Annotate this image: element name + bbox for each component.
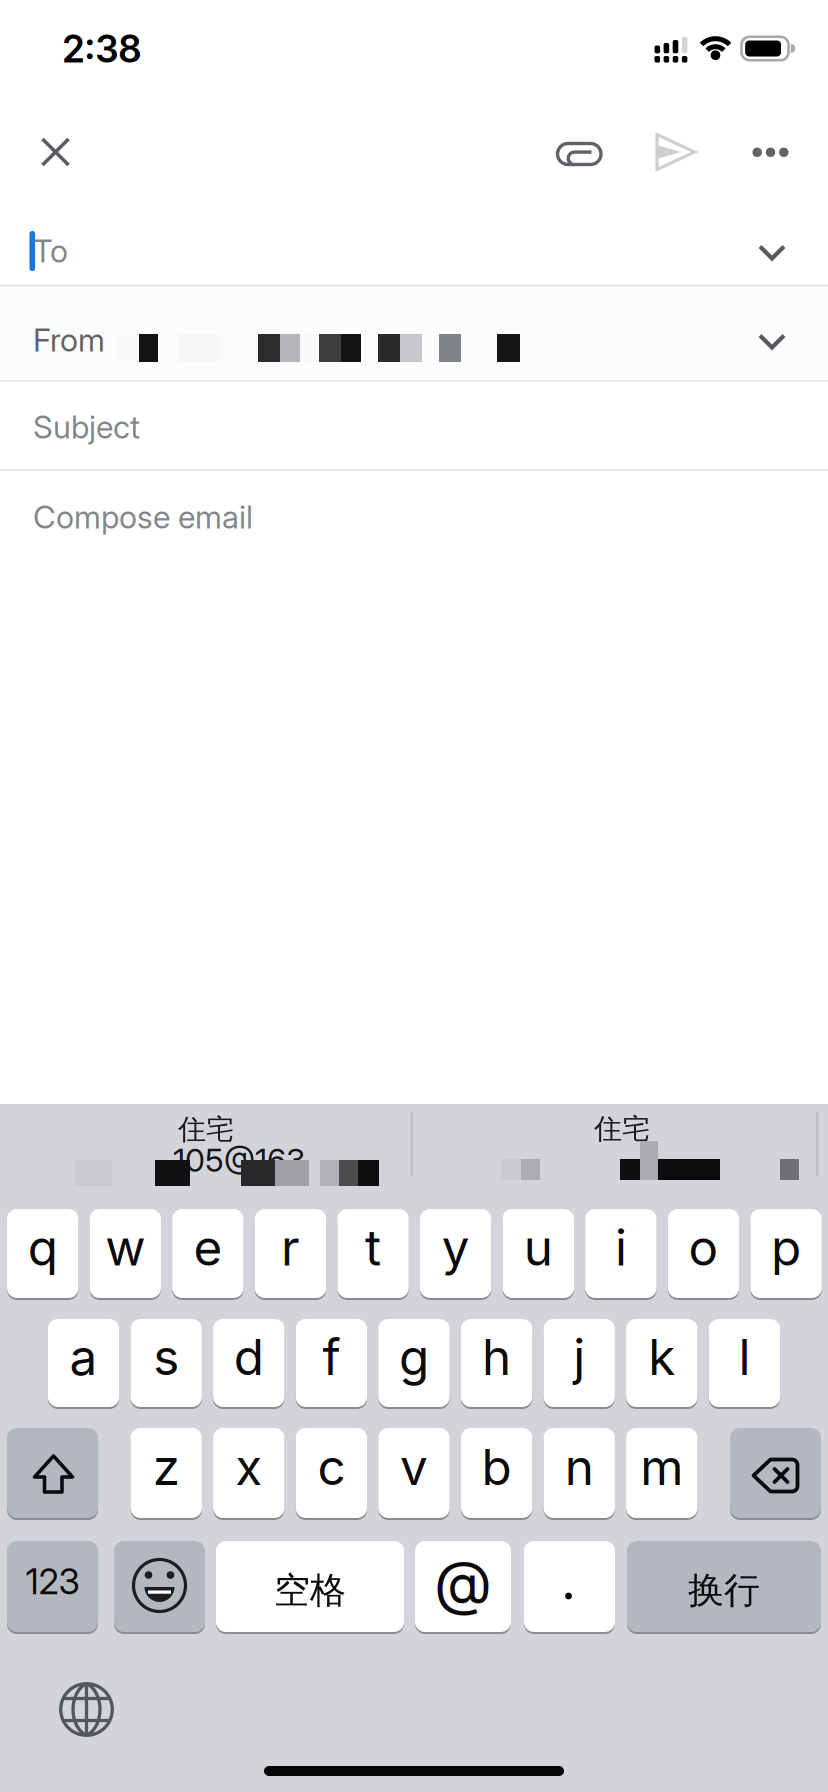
staticText: j — [573, 1327, 585, 1387]
button[interactable]: a — [48, 1318, 119, 1408]
button[interactable]: 123 — [7, 1540, 98, 1633]
button[interactable]: y — [420, 1208, 491, 1299]
button[interactable]: 住宅 — [21, 1104, 391, 1204]
button[interactable]: 住宅 — [437, 1104, 807, 1204]
button[interactable]: z — [130, 1427, 202, 1519]
staticText: g — [399, 1327, 429, 1387]
staticText: t — [365, 1218, 381, 1277]
staticText: y — [442, 1218, 470, 1277]
staticText: Subject — [33, 408, 140, 446]
button[interactable]: c — [296, 1427, 367, 1519]
staticText: To — [33, 232, 68, 270]
button[interactable]: Emoji — [114, 1540, 205, 1633]
staticText: q — [28, 1218, 58, 1277]
staticText: n — [565, 1437, 594, 1497]
staticText: i — [615, 1218, 627, 1277]
button[interactable]: p — [750, 1208, 822, 1299]
button[interactable]: d — [213, 1318, 284, 1408]
button[interactable]: l — [709, 1318, 780, 1408]
button[interactable]: More options — [735, 117, 805, 187]
staticText: w — [105, 1218, 145, 1277]
staticText: x — [235, 1437, 262, 1497]
button[interactable]: Next keyboard — [44, 1667, 128, 1751]
button[interactable]: g — [378, 1318, 450, 1408]
button[interactable]: n — [543, 1427, 615, 1519]
staticText: p — [771, 1218, 801, 1277]
staticText: v — [400, 1437, 428, 1497]
button[interactable]: j — [543, 1318, 615, 1408]
staticText: m — [640, 1437, 683, 1497]
staticText: 123 — [25, 1560, 79, 1603]
button[interactable]: Send — [630, 108, 718, 196]
staticText: From — [33, 321, 105, 359]
staticText: d — [234, 1327, 264, 1387]
staticText: 2:38 — [62, 26, 141, 72]
staticText: 住宅 — [178, 1112, 234, 1147]
staticText: z — [153, 1437, 180, 1497]
staticText: u — [524, 1218, 553, 1277]
staticText: a — [70, 1327, 98, 1387]
button[interactable]: r — [255, 1208, 326, 1299]
button[interactable]: Compose email — [0, 471, 828, 571]
button[interactable]: 空格 — [216, 1540, 404, 1633]
button[interactable]: Shift — [7, 1427, 98, 1519]
button[interactable]: v — [378, 1427, 450, 1519]
button[interactable]: i — [585, 1208, 657, 1299]
button[interactable]: m — [626, 1427, 697, 1519]
button[interactable]: Close — [12, 108, 100, 196]
staticText: s — [153, 1327, 179, 1387]
button[interactable]: From — [0, 287, 828, 380]
staticText: 住宅 — [594, 1111, 650, 1147]
button[interactable]: x — [213, 1427, 284, 1519]
staticText: 空格 — [274, 1568, 346, 1613]
staticText: h — [482, 1327, 511, 1387]
staticText: o — [688, 1218, 718, 1277]
staticText: 换行 — [688, 1568, 760, 1613]
staticText: r — [281, 1218, 300, 1277]
button[interactable]: Delete — [730, 1427, 821, 1519]
button[interactable]: q — [7, 1208, 78, 1299]
button[interactable]: e — [172, 1208, 244, 1299]
button[interactable]: 换行 — [627, 1540, 821, 1633]
button[interactable]: t — [337, 1208, 409, 1299]
button[interactable]: s — [130, 1318, 202, 1408]
button[interactable]: b — [461, 1427, 532, 1519]
button[interactable]: @ — [415, 1540, 511, 1633]
button[interactable]: k — [626, 1318, 697, 1408]
button[interactable]: Subject — [0, 382, 828, 469]
staticText: f — [322, 1327, 340, 1387]
button[interactable]: Period — [524, 1540, 615, 1633]
staticText: @ — [434, 1546, 492, 1619]
button[interactable]: f — [296, 1318, 367, 1408]
staticText: b — [482, 1437, 512, 1497]
staticText: k — [648, 1327, 675, 1387]
button[interactable]: h — [461, 1318, 532, 1408]
staticText: e — [193, 1218, 222, 1277]
button[interactable]: Attach file — [535, 108, 623, 196]
button[interactable]: w — [90, 1208, 161, 1299]
staticText: Compose email — [33, 498, 253, 536]
button[interactable]: o — [668, 1208, 739, 1299]
staticText: c — [317, 1437, 345, 1497]
staticText: l — [738, 1327, 750, 1387]
button[interactable]: u — [503, 1208, 574, 1299]
button[interactable]: To — [0, 208, 828, 286]
staticText: 105@163 — [173, 1141, 305, 1179]
